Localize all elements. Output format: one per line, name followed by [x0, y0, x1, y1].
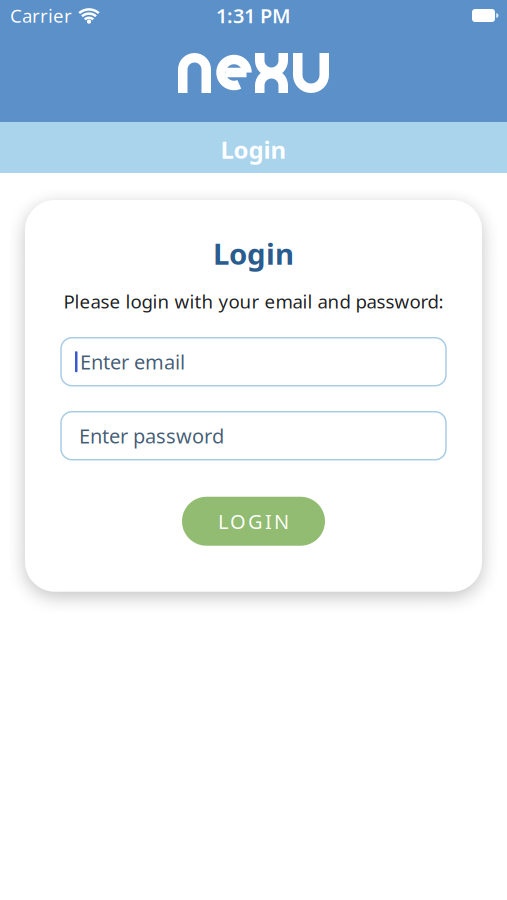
button[interactable]: Enter password	[61, 412, 446, 460]
staticText: L O G I N	[218, 508, 289, 535]
staticText: 1:31 PM	[216, 2, 291, 29]
staticText: Enter password	[79, 422, 224, 449]
staticText: Login	[213, 234, 294, 273]
staticText: Login	[220, 134, 286, 165]
staticText: Carrier	[10, 3, 72, 28]
button[interactable]: L O G I N	[182, 497, 325, 546]
staticText: Enter email	[80, 348, 185, 375]
staticText: Please login with your email and passwor…	[63, 289, 443, 314]
button[interactable]: Enter email	[61, 338, 446, 386]
